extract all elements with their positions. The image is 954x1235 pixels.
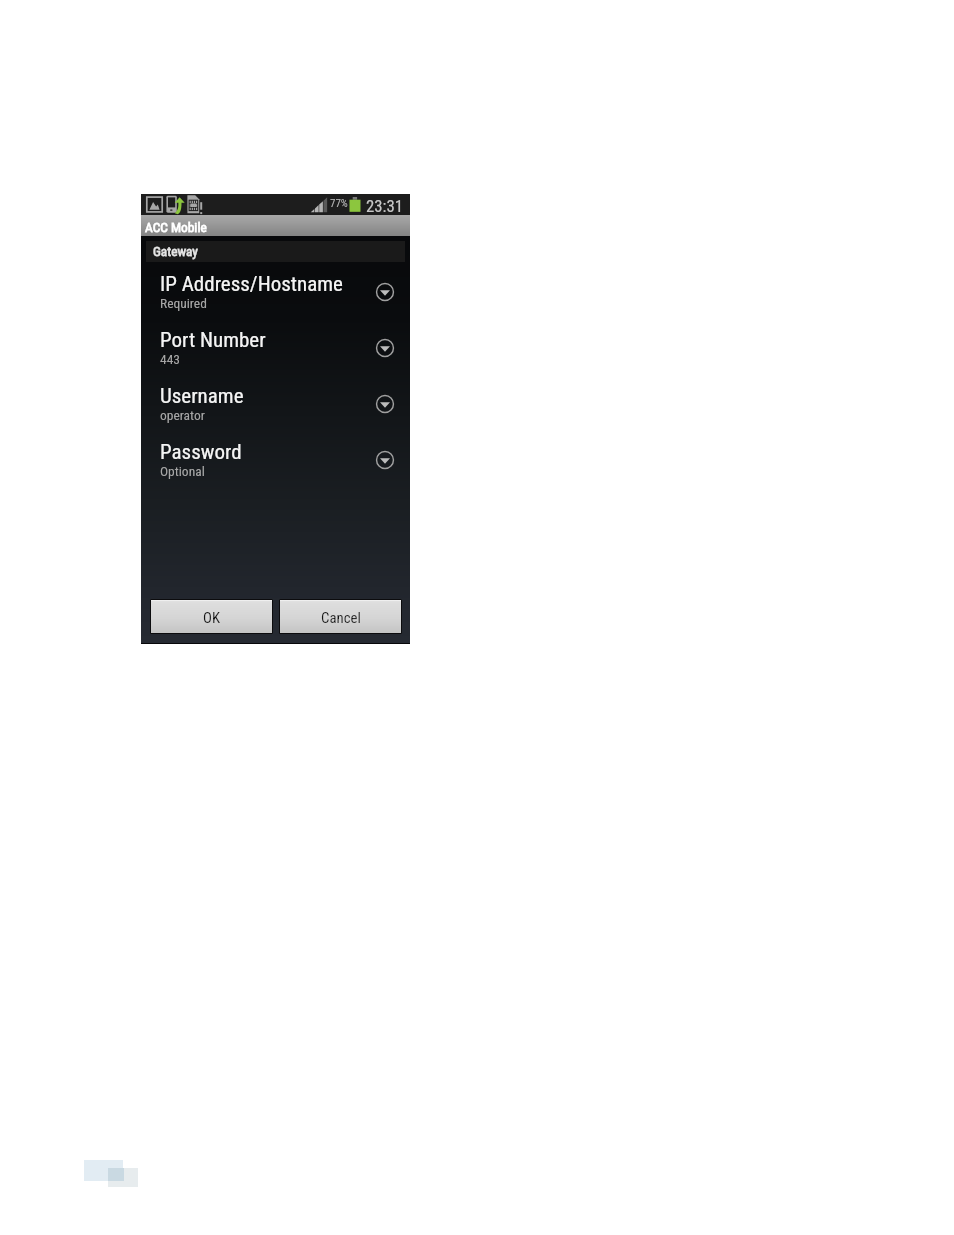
staticText: 77% — [330, 197, 348, 210]
button[interactable]: OK — [150, 599, 273, 634]
staticText: Password — [160, 440, 242, 465]
button[interactable]: Port Number — [141, 318, 410, 374]
staticText: 23:31 — [366, 196, 404, 216]
staticText: Gateway — [153, 244, 198, 260]
staticText: IP Address/Hostname — [160, 272, 343, 297]
button[interactable]: Edit Port Number — [371, 334, 399, 362]
staticText: Username — [160, 384, 244, 409]
button[interactable]: Edit IP Address/Hostname — [371, 278, 399, 306]
staticText: OK — [203, 609, 220, 626]
button[interactable]: Cancel — [279, 599, 402, 634]
button[interactable]: IP Address/Hostname — [141, 262, 410, 318]
button[interactable]: Username — [141, 374, 410, 430]
staticText: 443 — [160, 351, 180, 367]
button[interactable]: Edit Password — [371, 446, 399, 474]
staticText: operator — [160, 407, 205, 423]
button[interactable]: Password — [141, 430, 410, 486]
button[interactable]: Edit Username — [371, 390, 399, 418]
staticText: Required — [160, 295, 207, 311]
staticText: Port Number — [160, 328, 266, 353]
staticText: ACC Mobile — [145, 220, 207, 236]
staticText: Optional — [160, 463, 205, 479]
staticText: Cancel — [321, 609, 361, 626]
